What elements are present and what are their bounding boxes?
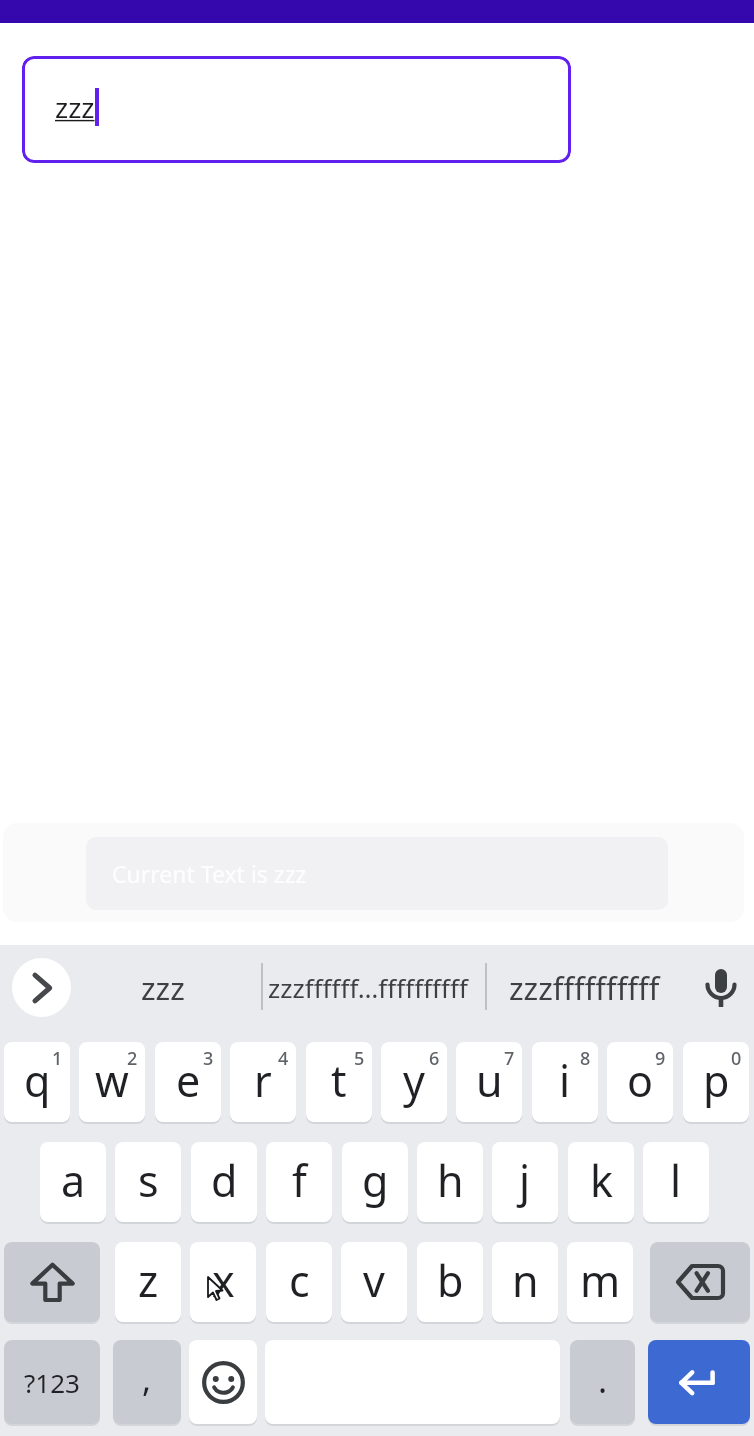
staticText: c xyxy=(289,1251,310,1310)
staticText: s xyxy=(138,1151,159,1210)
staticText: zzz xyxy=(141,967,185,1009)
staticText: ?123 xyxy=(24,1365,80,1400)
button[interactable] xyxy=(701,963,741,1009)
staticText: j xyxy=(519,1151,531,1210)
staticText: 3 xyxy=(203,1046,214,1071)
button[interactable]: b xyxy=(417,1242,483,1322)
button[interactable]: u xyxy=(456,1042,522,1122)
staticText: . xyxy=(598,1357,608,1403)
staticText: zzzffffff…ffffffffff xyxy=(268,970,468,1005)
staticText: , xyxy=(142,1356,152,1402)
staticText: 9 xyxy=(655,1046,666,1071)
staticText: 5 xyxy=(354,1046,365,1071)
staticText: 7 xyxy=(504,1046,515,1071)
button[interactable]: t xyxy=(306,1042,372,1122)
staticText: Current Text is zzz xyxy=(112,858,307,889)
staticText: 1 xyxy=(52,1046,63,1071)
staticText: m xyxy=(580,1251,621,1310)
staticText: h xyxy=(437,1151,464,1210)
button[interactable]: a xyxy=(40,1142,106,1222)
staticText: d xyxy=(211,1151,238,1210)
button[interactable]: g xyxy=(342,1142,408,1222)
button[interactable]: c xyxy=(266,1242,332,1322)
staticText: w xyxy=(95,1051,129,1110)
button[interactable]: k xyxy=(568,1142,634,1222)
button[interactable] xyxy=(12,958,71,1017)
staticText: k xyxy=(590,1151,613,1210)
staticText: q xyxy=(24,1051,51,1110)
staticText: 4 xyxy=(278,1046,289,1071)
button[interactable]: y xyxy=(381,1042,447,1122)
staticText: y xyxy=(403,1051,425,1110)
button[interactable] xyxy=(648,1340,750,1424)
staticText: 0 xyxy=(731,1046,742,1071)
button[interactable]: o xyxy=(607,1042,673,1122)
button[interactable]: h xyxy=(417,1142,483,1222)
staticText: e xyxy=(176,1051,201,1110)
staticText: a xyxy=(61,1151,86,1210)
button[interactable]: d xyxy=(191,1142,257,1222)
staticText: l xyxy=(670,1151,682,1210)
staticText: x xyxy=(212,1251,235,1310)
staticText: 8 xyxy=(580,1046,591,1071)
button[interactable]: w xyxy=(79,1042,145,1122)
button[interactable]: z xyxy=(115,1242,181,1322)
button[interactable] xyxy=(189,1340,257,1424)
button[interactable]: s xyxy=(115,1142,181,1222)
staticText: t xyxy=(331,1051,347,1110)
button[interactable]: zzzffffffffff xyxy=(494,958,674,1017)
staticText: g xyxy=(362,1151,389,1210)
staticText: zzz xyxy=(55,88,95,126)
staticText: b xyxy=(437,1251,464,1310)
button[interactable]: j xyxy=(492,1142,558,1222)
button[interactable] xyxy=(650,1242,750,1322)
staticText: o xyxy=(627,1051,654,1110)
button[interactable]: i xyxy=(532,1042,598,1122)
button[interactable]: , xyxy=(113,1340,181,1424)
button[interactable]: l xyxy=(643,1142,709,1222)
staticText: u xyxy=(476,1051,503,1110)
button[interactable] xyxy=(4,1242,100,1322)
button[interactable]: m xyxy=(567,1242,633,1322)
staticText: 6 xyxy=(429,1046,440,1071)
button[interactable]: zzz xyxy=(22,56,571,163)
button[interactable]: n xyxy=(492,1242,558,1322)
button[interactable]: f xyxy=(266,1142,332,1222)
staticText: i xyxy=(559,1051,571,1110)
staticText: n xyxy=(512,1251,539,1310)
button[interactable]: r xyxy=(230,1042,296,1122)
button[interactable]: e xyxy=(155,1042,221,1122)
staticText: 2 xyxy=(127,1046,138,1071)
button[interactable]: v xyxy=(341,1242,407,1322)
button[interactable]: . xyxy=(570,1340,635,1424)
staticText: p xyxy=(703,1051,730,1110)
button[interactable]: p xyxy=(683,1042,749,1122)
staticText: zzzffffffffff xyxy=(509,967,660,1009)
button[interactable]: x xyxy=(190,1242,256,1322)
staticText: f xyxy=(292,1151,307,1210)
staticText: v xyxy=(363,1251,385,1310)
staticText: z xyxy=(138,1251,159,1310)
button[interactable]: zzzffffff…ffffffffff xyxy=(258,958,478,1017)
staticText: r xyxy=(254,1051,272,1110)
button[interactable]: zzz xyxy=(96,958,229,1017)
button[interactable]: ?123 xyxy=(4,1340,100,1424)
button[interactable]: q xyxy=(4,1042,70,1122)
